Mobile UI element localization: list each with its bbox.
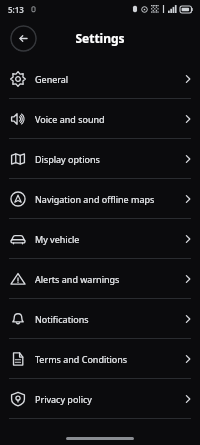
button[interactable]: Back <box>10 25 37 52</box>
staticText: Voice and sound <box>35 113 105 125</box>
button[interactable]: Navigation and offline maps <box>0 179 200 219</box>
button[interactable]: Voice and sound <box>0 99 200 139</box>
staticText: Display options <box>35 153 100 165</box>
button[interactable]: Notifications <box>0 299 200 339</box>
staticText: Terms and Conditions <box>35 353 128 365</box>
staticText: Notifications <box>35 313 89 325</box>
staticText: Settings <box>75 30 125 46</box>
staticText: Privacy policy <box>35 393 92 405</box>
staticText: Navigation and offline maps <box>35 193 155 205</box>
button[interactable]: Display options <box>0 139 200 179</box>
button[interactable]: Privacy policy <box>0 379 200 419</box>
button[interactable]: Alerts and warnings <box>0 259 200 299</box>
button[interactable]: My vehicle <box>0 219 200 259</box>
button[interactable]: General <box>0 59 200 99</box>
staticText: General <box>35 73 69 85</box>
staticText: Alerts and warnings <box>35 273 120 285</box>
button[interactable]: Terms and Conditions <box>0 339 200 379</box>
staticText: My vehicle <box>35 233 80 245</box>
staticText: 5:13 <box>8 4 24 15</box>
